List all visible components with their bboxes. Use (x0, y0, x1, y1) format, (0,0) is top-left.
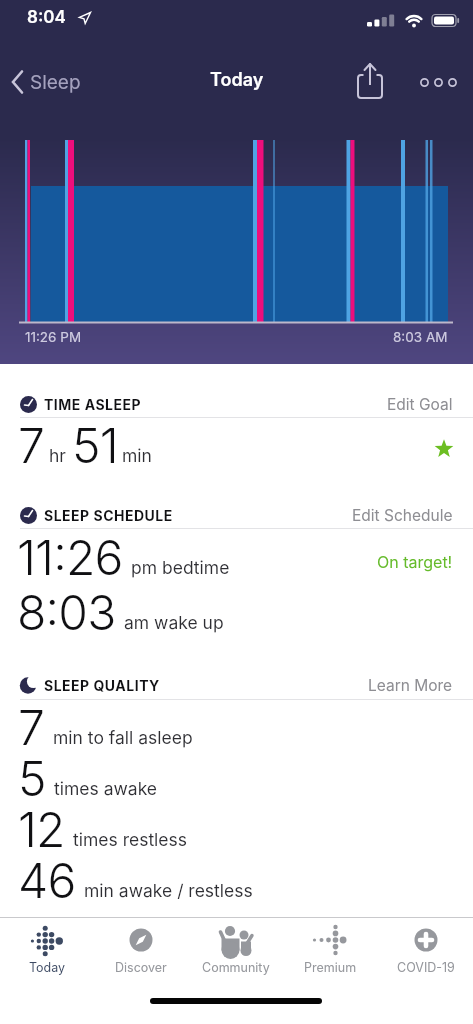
staticText: 11:26 (17, 528, 123, 586)
staticText: 7 (18, 416, 45, 474)
staticText: times awake (54, 778, 158, 799)
staticText: SLEEP QUALITY (44, 677, 160, 694)
staticText: TIME ASLEEP (44, 396, 142, 413)
staticText: min to fall asleep (53, 727, 193, 748)
button[interactable]: Community (188, 918, 283, 988)
button[interactable]: COVID-19 (378, 918, 473, 988)
staticText: 51 (72, 416, 118, 474)
button[interactable]: Learn More (368, 676, 453, 695)
button[interactable]: Today (0, 918, 94, 988)
staticText: Today (29, 960, 66, 975)
button[interactable]: Edit Schedule (352, 506, 453, 525)
button[interactable]: Discover (94, 918, 188, 988)
staticText: 5 (18, 749, 46, 807)
staticText: Today (210, 69, 264, 91)
staticText: On target! (377, 552, 453, 571)
staticText: Sleep (30, 71, 81, 94)
staticText: SLEEP SCHEDULE (44, 507, 173, 524)
staticText: min awake / restless (84, 880, 253, 901)
staticText: 8:04 (27, 7, 66, 28)
button[interactable] (352, 60, 392, 104)
staticText: COVID-19 (397, 960, 455, 975)
staticText: times restless (73, 829, 188, 850)
staticText: 7 (18, 698, 45, 756)
staticText: Community (202, 960, 270, 975)
staticText: 11:26 PM (25, 329, 82, 345)
button[interactable] (414, 66, 462, 98)
button[interactable]: Edit Goal (387, 395, 453, 414)
button[interactable]: Premium (283, 918, 378, 988)
staticText: hr (49, 445, 66, 466)
staticText: 8:03 (17, 583, 116, 641)
staticText: am wake up (124, 612, 224, 633)
staticText: Discover (115, 960, 167, 975)
staticText: pm bedtime (131, 557, 230, 578)
staticText: 12 (18, 800, 65, 858)
staticText: 46 (18, 851, 76, 909)
staticText: 8:03 AM (393, 329, 448, 345)
staticText: min (122, 445, 152, 466)
staticText: Premium (304, 960, 357, 975)
button[interactable]: Sleep (6, 66, 85, 98)
button[interactable] (429, 434, 459, 464)
